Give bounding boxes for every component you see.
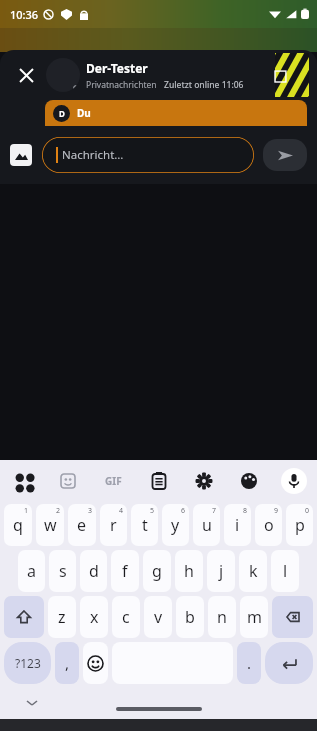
button[interactable]: r xyxy=(100,504,127,546)
button[interactable]: j xyxy=(207,550,235,592)
button[interactable]: f xyxy=(111,550,139,592)
button[interactable]: m xyxy=(240,596,268,638)
button[interactable] xyxy=(46,58,80,92)
button[interactable]: t xyxy=(131,504,158,546)
staticText: r xyxy=(110,514,117,536)
button[interactable]: Design xyxy=(236,468,262,494)
staticText: D xyxy=(59,108,65,119)
button[interactable]: y xyxy=(162,504,189,546)
staticText: j xyxy=(219,560,224,582)
button[interactable]: Einstellungen xyxy=(191,468,217,494)
staticText: 9 xyxy=(274,506,279,516)
staticText: c xyxy=(122,606,130,628)
staticText: Privatnachrichten xyxy=(86,79,157,91)
button[interactable]: D xyxy=(45,100,307,126)
staticText: Nachricht… xyxy=(62,147,124,163)
button[interactable]: n xyxy=(208,596,236,638)
button[interactable]: Umschalt xyxy=(4,596,44,638)
staticText: v xyxy=(154,606,163,628)
button[interactable]: Nachricht… xyxy=(42,137,254,173)
staticText: Zuletzt online 11:06 xyxy=(164,79,244,91)
button[interactable]: v xyxy=(144,596,172,638)
staticText: n xyxy=(217,606,227,628)
button[interactable]: h xyxy=(175,550,203,592)
button[interactable]: Spracheingabe xyxy=(281,468,307,494)
button[interactable]: ?123 xyxy=(4,642,51,684)
staticText: g xyxy=(152,560,162,582)
button[interactable]: s xyxy=(49,550,76,592)
staticText: 8 xyxy=(243,506,248,516)
button[interactable]: Löschen xyxy=(272,596,313,638)
staticText: t xyxy=(142,514,148,536)
staticText: x xyxy=(90,606,99,628)
button[interactable]: Bild anhängen xyxy=(10,144,32,166)
button[interactable]: Bild xyxy=(275,53,309,97)
button[interactable]: Emoji xyxy=(83,642,108,684)
staticText: Du xyxy=(77,106,91,120)
button[interactable]: p xyxy=(286,504,313,546)
button[interactable]: q xyxy=(4,504,32,546)
staticText: h xyxy=(184,560,194,582)
staticText: GIF xyxy=(105,474,122,488)
staticText: e xyxy=(77,514,87,536)
button[interactable]: d xyxy=(80,550,107,592)
staticText: y xyxy=(171,514,180,536)
staticText: b xyxy=(185,606,195,628)
staticText: z xyxy=(58,606,66,628)
staticText: 0 xyxy=(305,506,310,516)
button[interactable]: Senden xyxy=(263,139,307,171)
button[interactable]: . xyxy=(237,642,261,684)
button[interactable]: Sticker xyxy=(55,468,81,494)
button[interactable]: a xyxy=(18,550,45,592)
staticText: m xyxy=(247,606,262,628)
button[interactable]: e xyxy=(68,504,96,546)
staticText: . xyxy=(247,653,252,673)
staticText: o xyxy=(264,514,274,536)
button[interactable]: GIF xyxy=(100,468,126,494)
staticText: i xyxy=(235,514,240,536)
button[interactable]: Schließen xyxy=(10,59,42,91)
staticText: d xyxy=(89,560,99,582)
button[interactable]: i xyxy=(224,504,251,546)
staticText: q xyxy=(13,514,23,536)
button[interactable]: l xyxy=(271,550,299,592)
staticText: f xyxy=(122,560,128,582)
button[interactable]: o xyxy=(255,504,282,546)
button[interactable]: k xyxy=(239,550,267,592)
staticText: 2 xyxy=(56,506,61,516)
staticText: Der-Tester xyxy=(86,60,148,76)
staticText: 10:36 xyxy=(10,7,39,22)
staticText: 5 xyxy=(150,506,155,516)
staticText: a xyxy=(27,560,36,582)
staticText: s xyxy=(59,560,67,582)
staticText: 6 xyxy=(181,506,186,516)
button[interactable]: Eingabe xyxy=(265,642,313,684)
button[interactable]: , xyxy=(55,642,79,684)
staticText: l xyxy=(283,560,288,582)
staticText: k xyxy=(249,560,258,582)
staticText: 7 xyxy=(212,506,217,516)
button[interactable]: x xyxy=(80,596,108,638)
button[interactable]: Tastatur ausblenden xyxy=(22,693,42,713)
button[interactable]: c xyxy=(112,596,140,638)
button[interactable]: w xyxy=(36,504,64,546)
button[interactable]: z xyxy=(48,596,76,638)
staticText: 4 xyxy=(119,506,124,516)
button[interactable]: g xyxy=(143,550,171,592)
button[interactable]: Zwischenablage xyxy=(146,468,172,494)
staticText: w xyxy=(44,514,57,536)
staticText: 3 xyxy=(88,506,93,516)
staticText: u xyxy=(202,514,212,536)
staticText: 1 xyxy=(24,506,29,516)
button[interactable]: b xyxy=(176,596,204,638)
button[interactable]: Apps xyxy=(10,468,36,494)
staticText: ?123 xyxy=(15,655,41,671)
staticText: , xyxy=(65,653,70,673)
button[interactable]: u xyxy=(193,504,220,546)
staticText: p xyxy=(295,514,305,536)
